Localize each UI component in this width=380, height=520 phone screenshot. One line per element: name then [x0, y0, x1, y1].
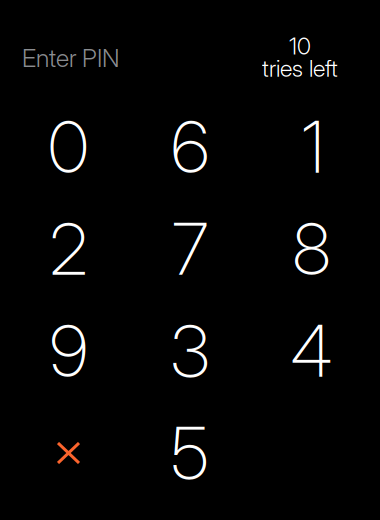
staticText: 6: [171, 104, 209, 190]
button[interactable]: 1: [251, 96, 372, 198]
staticText: 7: [172, 206, 208, 292]
button[interactable]: 5: [129, 402, 251, 504]
button[interactable]: Delete: [8, 402, 129, 504]
button[interactable]: 0: [8, 96, 129, 198]
staticText: Enter PIN: [22, 43, 120, 73]
button[interactable]: 3: [129, 300, 251, 402]
staticText: 0: [48, 104, 89, 190]
button[interactable]: 8: [251, 198, 372, 300]
staticText: 4: [290, 308, 332, 394]
staticText: 2: [49, 206, 87, 292]
staticText: 9: [49, 308, 87, 394]
staticText: 1: [301, 104, 324, 190]
staticText: tries left: [262, 54, 338, 82]
staticText: 10: [289, 32, 311, 60]
button[interactable]: 4: [251, 300, 372, 402]
staticText: 8: [292, 206, 330, 292]
button[interactable]: 7: [129, 198, 251, 300]
button[interactable]: 9: [8, 300, 129, 402]
button[interactable]: 2: [8, 198, 129, 300]
button[interactable]: 6: [129, 96, 251, 198]
staticText: 5: [171, 410, 209, 496]
staticText: 3: [170, 308, 209, 394]
